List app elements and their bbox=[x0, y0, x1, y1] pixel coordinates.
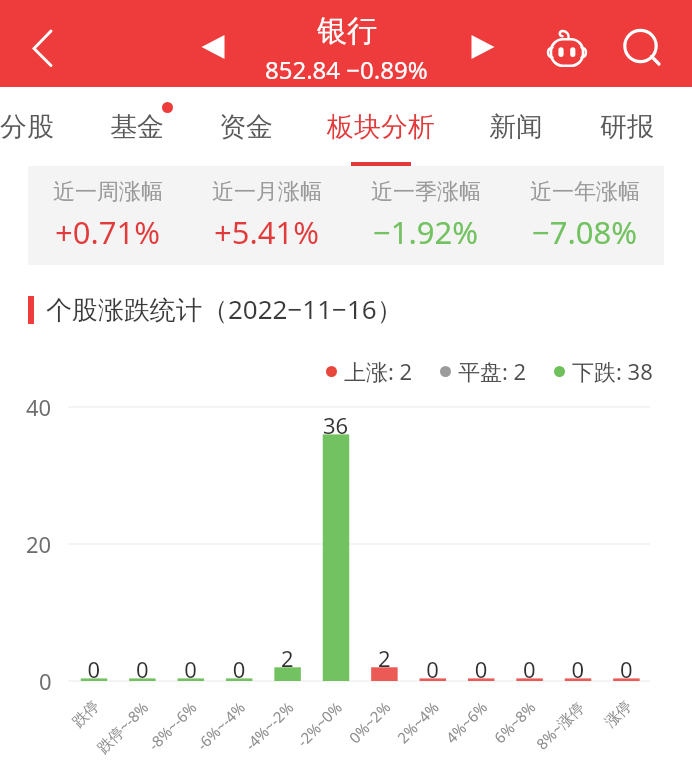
staticText: 上涨: 2 bbox=[344, 356, 413, 386]
staticText: 基金 bbox=[110, 110, 164, 144]
button[interactable]: Previous sector bbox=[189, 23, 237, 71]
staticText: 板块分析 bbox=[327, 110, 435, 144]
button[interactable]: AI assistant bbox=[542, 24, 592, 74]
staticText: 下跌: 38 bbox=[572, 356, 653, 386]
button[interactable]: 成分股 bbox=[0, 87, 67, 166]
staticText: −1.92% bbox=[373, 211, 478, 253]
staticText: 个股涨跌统计（2022−11−16） bbox=[46, 291, 403, 327]
button[interactable]: Next sector bbox=[459, 23, 507, 71]
staticText: 新闻 bbox=[489, 110, 543, 144]
staticText: 近一周涨幅 bbox=[53, 178, 163, 206]
button[interactable]: 新闻 bbox=[476, 87, 556, 166]
staticText: 近一月涨幅 bbox=[212, 178, 322, 206]
staticText: 成分股 bbox=[0, 110, 54, 144]
button[interactable]: 资金 bbox=[206, 87, 286, 166]
button[interactable]: Back bbox=[14, 20, 70, 76]
staticText: 研报 bbox=[600, 110, 654, 144]
staticText: +0.71% bbox=[55, 211, 160, 253]
button[interactable]: 基金 bbox=[97, 87, 177, 166]
staticText: 852.84 −0.89% bbox=[265, 53, 428, 86]
button[interactable]: 板块分析 bbox=[314, 87, 448, 166]
button[interactable]: Search bbox=[617, 22, 667, 72]
staticText: +5.41% bbox=[214, 211, 319, 253]
staticText: 平盘: 2 bbox=[458, 356, 527, 386]
button[interactable]: 个股涨跌分布柱状图 bbox=[0, 396, 692, 766]
staticText: 近一年涨幅 bbox=[530, 178, 640, 206]
staticText: 资金 bbox=[219, 110, 273, 144]
staticText: 银行 bbox=[317, 12, 377, 50]
button[interactable]: 研报 bbox=[587, 87, 667, 166]
staticText: −7.08% bbox=[532, 211, 637, 253]
staticText: 近一季涨幅 bbox=[371, 178, 481, 206]
